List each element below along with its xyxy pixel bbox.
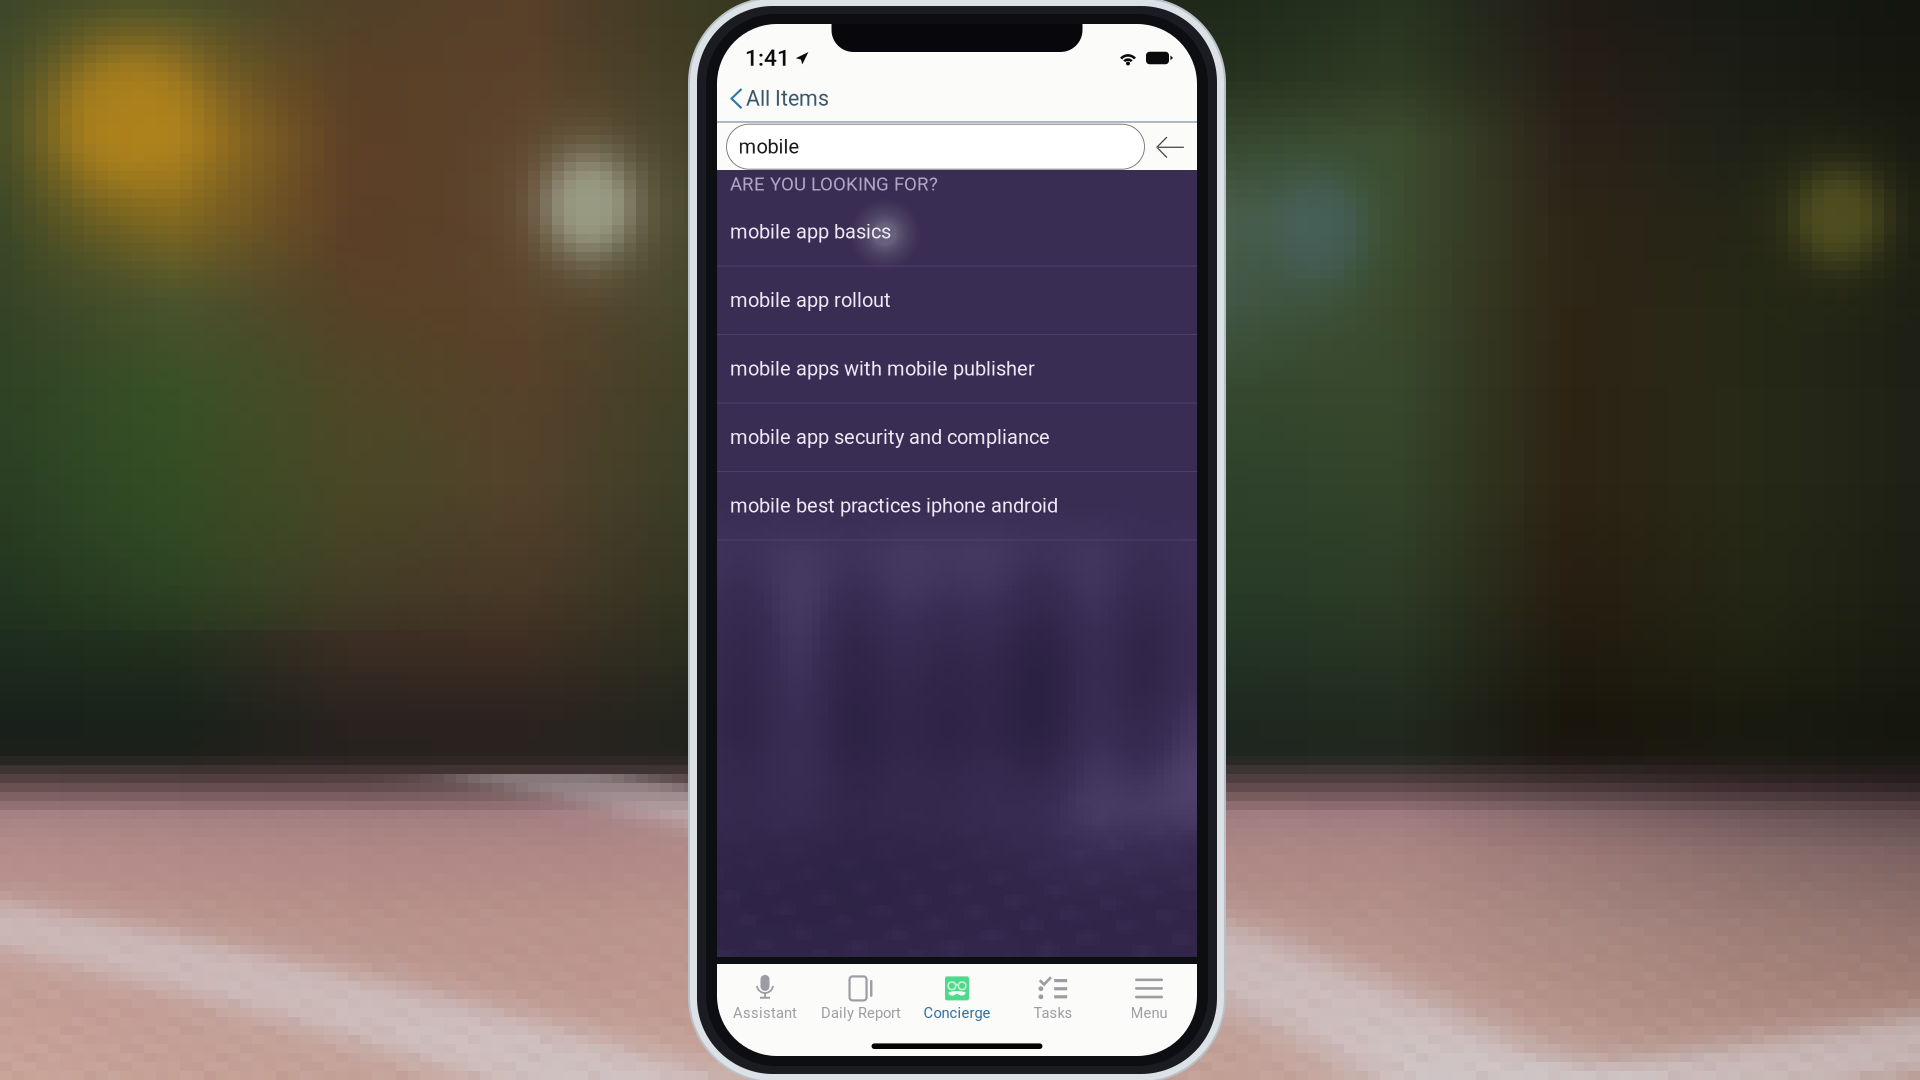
staticText: mobile best practices iphone android: [730, 494, 1058, 517]
staticText: Concierge: [923, 1004, 990, 1022]
staticText: mobile app rollout: [730, 288, 891, 312]
staticText: ARE YOU LOOKING FOR?: [730, 173, 938, 195]
staticText: mobile apps with mobile publisher: [730, 357, 1035, 380]
button[interactable]: Daily Report: [813, 972, 909, 1024]
staticText: Daily Report: [821, 1004, 901, 1022]
button[interactable]: Submit search: [1144, 125, 1192, 169]
staticText: Tasks: [1033, 1004, 1072, 1022]
staticText: mobile: [738, 135, 799, 158]
button[interactable]: mobile best practices iphone android: [717, 472, 1197, 539]
button[interactable]: Assistant: [717, 972, 813, 1024]
staticText: mobile app basics: [730, 220, 891, 243]
button[interactable]: Tasks: [1005, 972, 1101, 1024]
button[interactable]: mobile app rollout: [717, 266, 1197, 334]
button[interactable]: mobile: [726, 124, 1144, 169]
staticText: All Items: [746, 86, 829, 111]
staticText: Menu: [1130, 1004, 1167, 1022]
staticText: mobile app security and compliance: [730, 425, 1050, 449]
button[interactable]: Concierge: [909, 972, 1005, 1024]
button[interactable]: Menu: [1101, 972, 1197, 1024]
staticText: Assistant: [733, 1004, 797, 1022]
button[interactable]: mobile apps with mobile publisher: [717, 335, 1197, 402]
staticText: 1:41: [745, 45, 790, 71]
button[interactable]: mobile app security and compliance: [717, 403, 1197, 471]
button[interactable]: mobile app basics: [717, 198, 1197, 265]
button[interactable]: All Items: [717, 80, 841, 117]
